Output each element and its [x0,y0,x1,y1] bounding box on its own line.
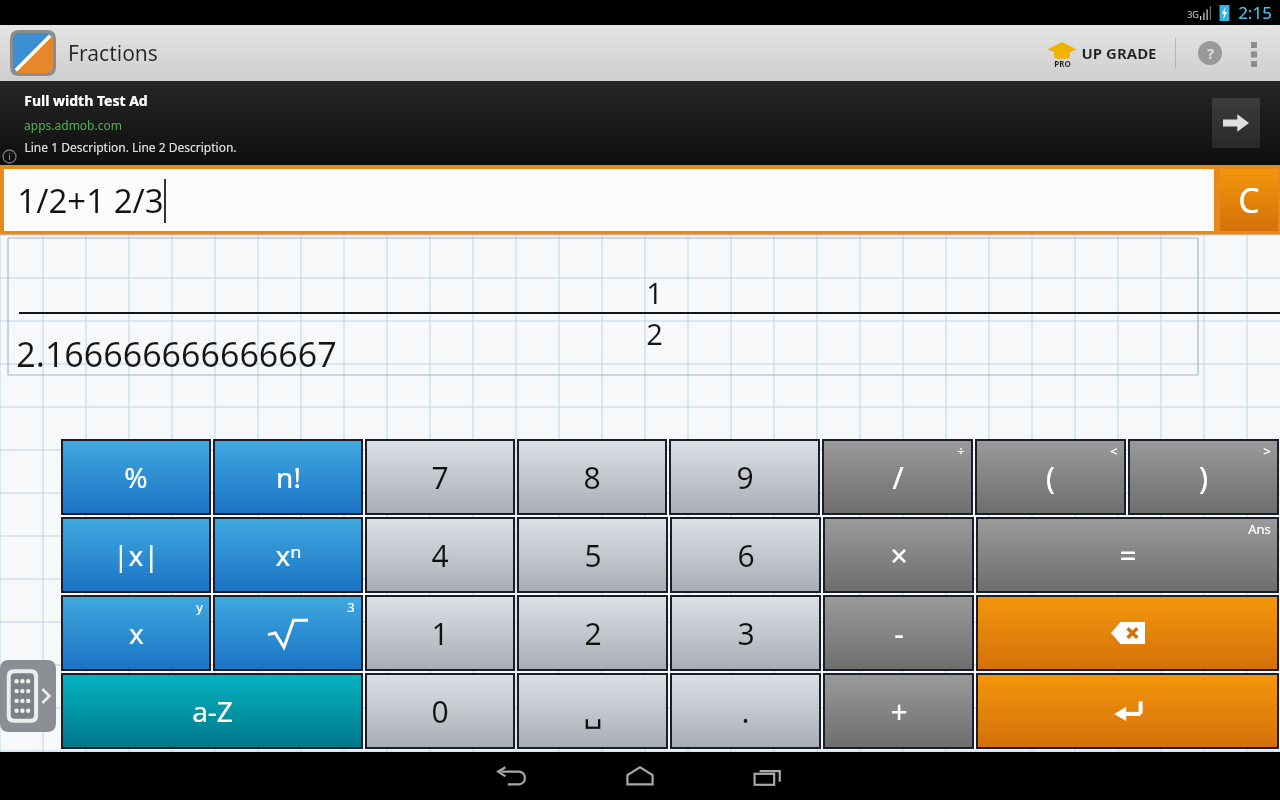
button[interactable]: 0 [367,675,513,747]
button[interactable]: 3 [215,597,361,669]
staticText: / [892,457,904,498]
staticText: |x| [113,536,159,574]
button[interactable]: 7 [367,441,513,513]
staticText: × [890,535,908,576]
staticText: i [8,151,11,162]
staticText: C [1238,177,1260,223]
staticText: ÷ [957,442,965,460]
button[interactable]: Show calculator panel [0,660,56,732]
staticText: y [196,598,203,616]
staticText: - [894,613,904,654]
staticText: 2.166666666666667 [16,331,337,377]
button[interactable]: |x| [63,519,209,591]
staticText: Ans [1248,520,1271,538]
button[interactable]: / [824,441,971,513]
staticText: xⁿ [275,536,302,574]
staticText: . [741,691,750,732]
staticText: n! [276,458,301,496]
button[interactable]: 5 [519,519,666,591]
staticText: Fractions [68,39,158,68]
staticText: > [1263,442,1271,460]
staticText: 4 [431,535,449,576]
staticText: = [1119,535,1137,576]
button[interactable]: 4 [367,519,513,591]
staticText: x [129,614,144,652]
staticText: a-Z [192,692,233,730]
button[interactable]: n! [215,441,361,513]
button[interactable]: a-Z [63,675,361,747]
staticText: Full width Test Ad [24,91,148,110]
button[interactable]: Ad info [0,147,18,165]
button[interactable]: Open ad [1212,98,1260,148]
button[interactable]: 6 [672,519,819,591]
button[interactable]: x [63,597,209,669]
button[interactable]: Full width Test Ad [0,81,1280,165]
staticText: 5 [584,535,602,576]
button[interactable]: = [978,519,1277,591]
staticText: 2 [584,613,602,654]
button[interactable]: Backspace [978,597,1277,669]
button[interactable]: ( [977,441,1124,513]
button[interactable]: Back [474,752,550,800]
button[interactable]: . [672,675,819,747]
button[interactable]: 3 [672,597,819,669]
button[interactable]: 1 [367,597,513,669]
button[interactable]: Enter [978,675,1277,747]
staticText: ( [1046,457,1055,498]
staticText: apps.admob.com [24,117,122,133]
staticText: ) [1199,457,1208,498]
staticText: 3G [1187,8,1199,20]
staticText: % [124,458,148,496]
button[interactable]: - [825,597,972,669]
staticText: UP GRADE [1081,43,1157,63]
button[interactable]: Help [1188,31,1232,75]
staticText: < [1110,442,1118,460]
button[interactable]: ␣ [519,675,666,747]
button[interactable]: Recent apps [730,752,806,800]
staticText: 1/2+1 2/3 [17,178,164,223]
button[interactable]: × [825,519,972,591]
staticText: ? [1207,44,1214,63]
staticText: 9 [736,457,754,498]
button[interactable]: + [825,675,972,747]
staticText: 7 [431,457,449,498]
button[interactable]: More options [1232,31,1276,75]
staticText: PRO [1054,58,1071,69]
button[interactable]: 2 [519,597,666,669]
button[interactable]: xⁿ [215,519,361,591]
button[interactable]: ) [1130,441,1277,513]
button[interactable]: % [63,441,209,513]
button[interactable]: 1/2+1 2/3 [4,169,1214,231]
staticText: Line 1 Description. Line 2 Description. [24,139,237,155]
staticText: 8 [583,457,601,498]
staticText: ␣ [583,694,603,729]
staticText: 0 [431,691,449,732]
staticText: 6 [737,535,755,576]
staticText: 3 [347,598,355,616]
staticText: + [890,691,908,732]
staticText: 2:15 [1238,1,1272,24]
staticText: 1 [646,273,663,312]
staticText: 2 [646,314,663,353]
staticText: 1 [431,613,449,654]
button[interactable]: Home [602,752,678,800]
button[interactable]: 8 [519,441,665,513]
staticText: 3 [737,613,755,654]
button[interactable]: 9 [671,441,818,513]
button[interactable]: C [1220,169,1278,231]
button[interactable]: PRO [1039,35,1165,71]
button[interactable]: Fractions [0,30,166,76]
